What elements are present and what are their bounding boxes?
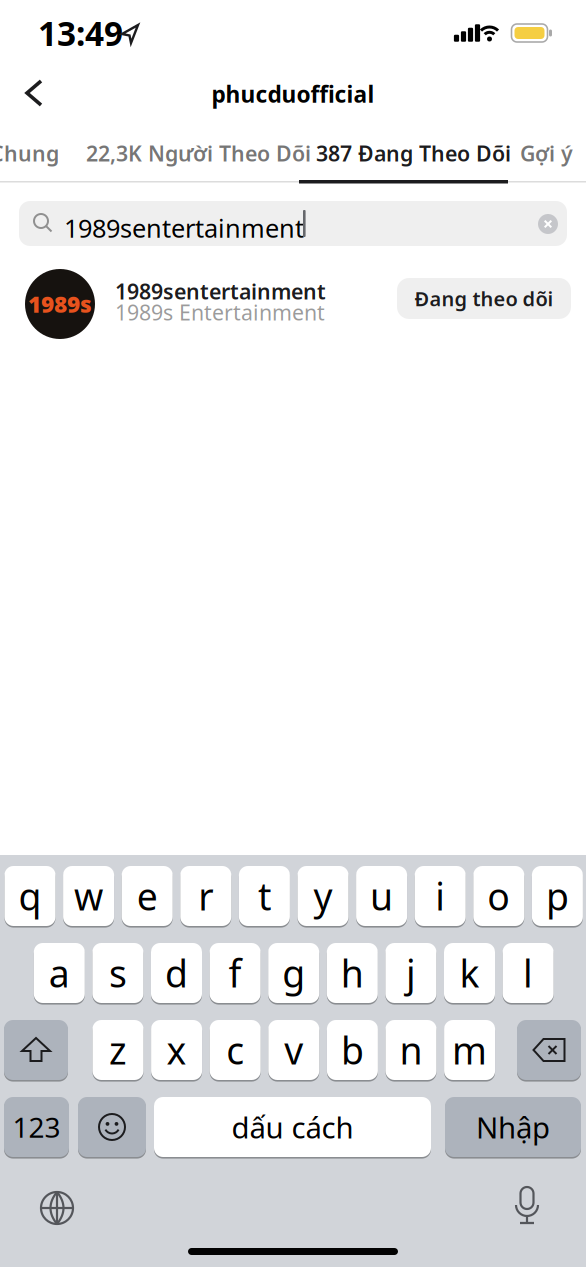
staticText: u xyxy=(370,871,393,921)
button[interactable]: 387 Đang Theo Dõi xyxy=(316,139,511,167)
staticText: p xyxy=(546,871,569,921)
button[interactable]: z xyxy=(92,1019,143,1081)
button[interactable]: n xyxy=(385,1019,436,1081)
button[interactable]: y xyxy=(297,865,348,927)
button[interactable]: Emoji xyxy=(78,1096,146,1158)
button[interactable]: j xyxy=(385,942,436,1004)
button[interactable]: 1989sentertainment profile xyxy=(25,269,95,339)
staticText: 22,3K Người Theo Dõi xyxy=(86,139,311,167)
button[interactable]: e xyxy=(122,865,173,927)
staticText: Nhập xyxy=(476,1107,550,1146)
button[interactable]: c xyxy=(210,1019,261,1081)
button[interactable]: Chung xyxy=(0,139,59,167)
staticText: h xyxy=(341,948,364,998)
staticText: Đang theo dõi xyxy=(414,285,553,312)
button[interactable]: Delete xyxy=(517,1019,581,1081)
button[interactable]: 1989sentertainment, 1989s Entertainment xyxy=(115,277,326,305)
button[interactable]: v xyxy=(268,1019,319,1081)
staticText: b xyxy=(341,1025,364,1075)
staticText: i xyxy=(435,871,445,921)
staticText: Gợi ý xyxy=(520,139,573,167)
button[interactable]: d xyxy=(151,942,202,1004)
staticText: 387 Đang Theo Dõi xyxy=(316,139,511,167)
button[interactable]: r xyxy=(180,865,231,927)
staticText: m xyxy=(452,1025,487,1075)
button[interactable]: w xyxy=(63,865,114,927)
staticText: dấu cách xyxy=(231,1107,353,1146)
button[interactable]: m xyxy=(444,1019,495,1081)
button[interactable]: l xyxy=(503,942,554,1004)
staticText: e xyxy=(137,871,158,921)
button[interactable]: q xyxy=(4,865,55,927)
button[interactable]: h xyxy=(327,942,378,1004)
staticText: s xyxy=(109,948,127,998)
button[interactable]: f xyxy=(210,942,261,1004)
staticText: 1989sentertainment xyxy=(64,211,304,245)
staticText: r xyxy=(198,871,213,921)
staticText: v xyxy=(284,1025,303,1075)
staticText: 1989sentertainment xyxy=(115,277,326,305)
button[interactable]: 22,3K Người Theo Dõi xyxy=(86,139,311,167)
staticText: 1989s xyxy=(28,289,92,319)
staticText: j xyxy=(406,948,416,998)
staticText: a xyxy=(49,948,70,998)
button[interactable]: o xyxy=(473,865,524,927)
button[interactable]: x xyxy=(151,1019,202,1081)
button[interactable]: b xyxy=(327,1019,378,1081)
staticText: d xyxy=(165,948,188,998)
staticText: o xyxy=(487,871,510,921)
button[interactable]: i xyxy=(415,865,466,927)
button[interactable]: k xyxy=(444,942,495,1004)
button[interactable]: Nhập xyxy=(445,1096,581,1158)
button[interactable]: t xyxy=(239,865,290,927)
staticText: t xyxy=(258,871,271,921)
staticText: Chung xyxy=(0,139,59,167)
staticText: z xyxy=(109,1025,127,1075)
button[interactable]: g xyxy=(268,942,319,1004)
staticText: g xyxy=(282,948,305,998)
staticText: c xyxy=(226,1025,244,1075)
button[interactable]: Shift xyxy=(4,1019,68,1081)
staticText: k xyxy=(459,948,479,998)
button[interactable]: Clear search text xyxy=(538,214,558,234)
button[interactable]: a xyxy=(34,942,85,1004)
button[interactable]: Next keyboard xyxy=(32,1183,82,1233)
button[interactable]: Search, 1989sentertainment xyxy=(19,201,567,246)
button[interactable]: s xyxy=(92,942,143,1004)
staticText: n xyxy=(399,1025,422,1075)
button[interactable]: 123 xyxy=(4,1096,69,1158)
staticText: 1989s Entertainment xyxy=(115,298,325,326)
staticText: f xyxy=(229,948,242,998)
button[interactable]: u xyxy=(356,865,407,927)
staticText: 13:49 xyxy=(38,11,123,55)
staticText: q xyxy=(18,871,41,921)
button[interactable]: dấu cách xyxy=(154,1096,431,1158)
staticText: w xyxy=(74,871,103,921)
button[interactable]: Gợi ý xyxy=(520,139,573,167)
staticText: phucduofficial xyxy=(211,79,374,109)
button[interactable]: Đang theo dõi xyxy=(397,278,571,319)
staticText: y xyxy=(313,871,332,921)
staticText: 123 xyxy=(12,1108,60,1146)
button[interactable]: Back xyxy=(16,71,56,115)
staticText: x xyxy=(167,1025,187,1075)
staticText: l xyxy=(523,948,533,998)
button[interactable]: Dictation xyxy=(504,1179,550,1232)
button[interactable]: p xyxy=(532,865,583,927)
